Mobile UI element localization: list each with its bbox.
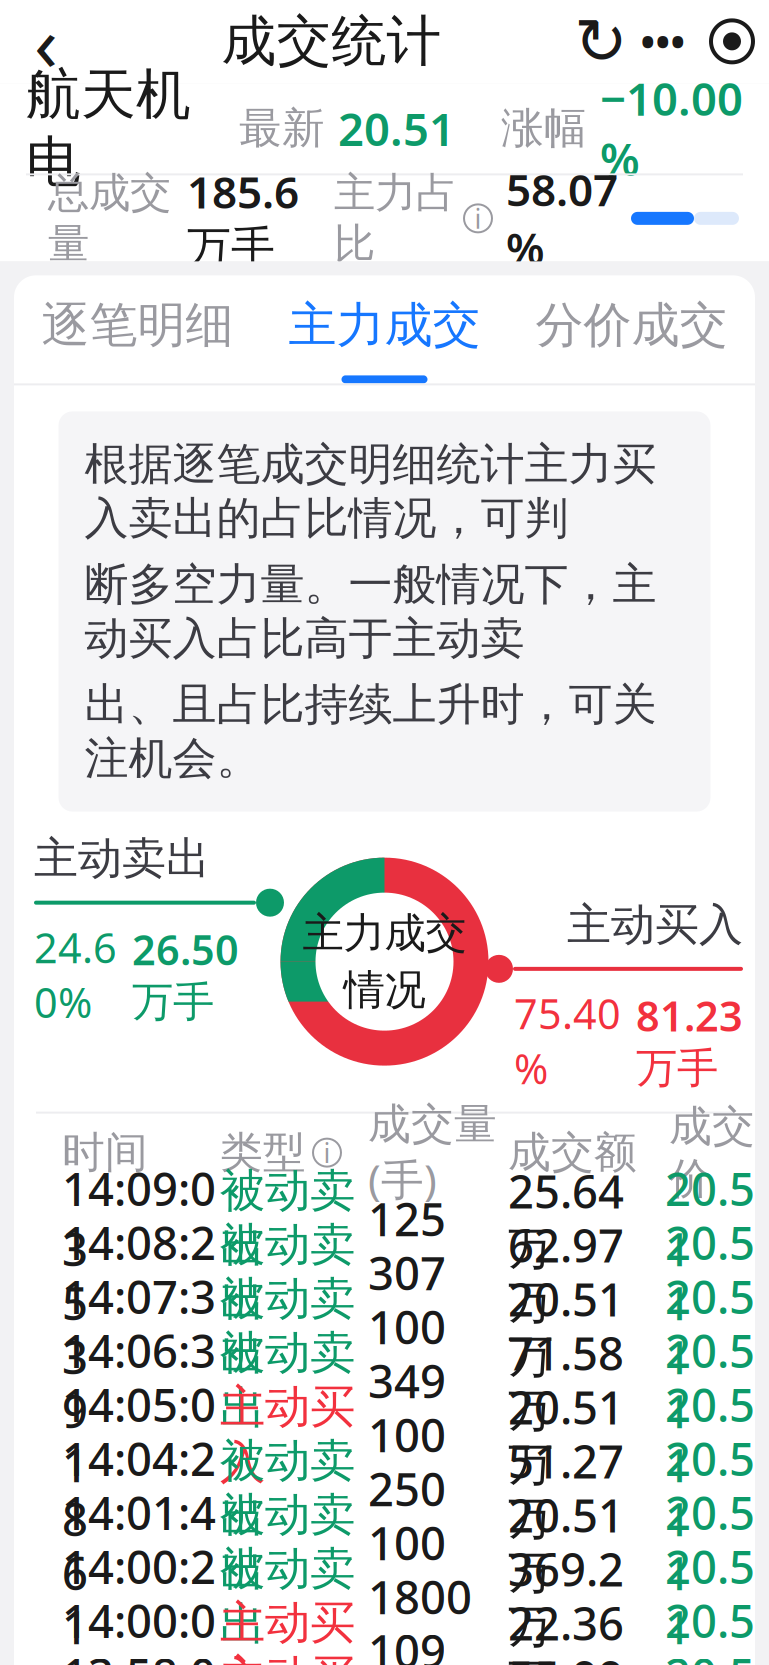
staticText: 主动买入 (567, 898, 743, 952)
staticText: 58.07% (506, 160, 618, 277)
staticText: 55.99万 (508, 1647, 624, 1665)
staticText: 最新 (239, 102, 325, 155)
staticText: 出、且占比持续上升时，可关注机会。 (84, 677, 656, 786)
staticText: 14:07:33 (62, 1266, 216, 1387)
staticText: 71.58万 (508, 1323, 624, 1439)
staticText: 369.2万 (508, 1539, 624, 1655)
button[interactable]: 14:01:46 (14, 1516, 755, 1570)
button[interactable]: 14:05:01 (14, 1408, 755, 1462)
staticText: 被动卖出 (220, 1325, 355, 1436)
staticText: 14:04:28 (62, 1428, 216, 1549)
staticText: 109 (368, 1620, 446, 1665)
staticText: 14:09:03 (62, 1158, 216, 1279)
staticText: 成交价 (669, 1100, 755, 1205)
staticText: 被动卖出 (220, 1433, 355, 1544)
staticText: 主动买入 (220, 1595, 355, 1665)
staticText: 14:05:01 (62, 1374, 216, 1495)
staticText: 断多空力量。一般情况下，主动买入占比高于主动卖 (84, 557, 656, 666)
staticText: 被动卖出 (220, 1541, 355, 1652)
staticText: 主动买入 (220, 1649, 355, 1665)
staticText: 26.50万手 (132, 922, 239, 1027)
staticText: i (323, 1135, 330, 1170)
staticText: 14:00:01 (62, 1590, 216, 1665)
staticText: 时间 (62, 1126, 148, 1179)
staticText: 13:58:04 (62, 1644, 216, 1665)
staticText: ‹ (34, 0, 58, 93)
staticText: 20.51 (665, 1482, 755, 1603)
staticText: 主力成交 (288, 296, 480, 355)
staticText: 307 (368, 1242, 446, 1303)
button[interactable]: 14:04:28 (14, 1462, 755, 1516)
staticText: 20.51万 (508, 1485, 624, 1601)
button[interactable]: 逐笔明细 (14, 275, 261, 383)
staticText: 20.51 (665, 1590, 755, 1665)
staticText: 成交统计 (221, 8, 441, 75)
staticText: 主力占比 (334, 168, 457, 269)
staticText: 情况 (343, 965, 425, 1015)
staticText: ••• (640, 16, 685, 67)
staticText: 20.51 (665, 1212, 755, 1333)
staticText: 1800 (368, 1566, 472, 1627)
button[interactable]: 14:00:21 (14, 1570, 755, 1624)
button[interactable]: Record (695, 0, 769, 83)
staticText: 250 (368, 1458, 446, 1519)
staticText: 20.51 (665, 1644, 755, 1665)
button[interactable]: 14:00:01 (14, 1624, 755, 1665)
staticText: 成交量(手) (368, 1098, 497, 1207)
staticText: 分价成交 (535, 296, 727, 355)
staticText: 涨幅 (501, 102, 587, 155)
staticText: 类型 (220, 1126, 306, 1179)
staticText: 主力成交 (302, 908, 466, 959)
staticText: 349 (368, 1350, 446, 1411)
button[interactable]: 分价成交 (508, 275, 755, 383)
staticText: 14:06:39 (62, 1320, 216, 1441)
staticText: 100 (368, 1512, 446, 1573)
staticText: 75.40% (514, 986, 621, 1096)
staticText: 62.97万 (508, 1215, 624, 1331)
staticText: −10.00% (600, 68, 743, 189)
staticText: 20.51万 (508, 1269, 624, 1385)
staticText: 20.51 (665, 1158, 755, 1279)
button[interactable]: 主力成交 (261, 275, 508, 383)
staticText: 14:01:46 (62, 1482, 216, 1603)
staticText: 14:00:21 (62, 1536, 216, 1657)
staticText: 航天机电 (26, 61, 191, 195)
staticText: 100 (368, 1296, 446, 1357)
button[interactable]: Refresh (571, 0, 631, 83)
staticText: 主动买入 (220, 1379, 355, 1490)
staticText: 81.23万手 (636, 988, 743, 1094)
staticText: 20.51 (665, 1536, 755, 1657)
staticText: 被动卖出 (220, 1487, 355, 1598)
staticText: 20.51 (665, 1266, 755, 1387)
staticText: 25.64万 (508, 1161, 624, 1277)
staticText: 逐笔明细 (41, 296, 233, 355)
staticText: 主动卖出 (34, 832, 210, 886)
staticText: 根据逐笔成交明细统计主力买入卖出的占比情况，可判 (84, 437, 656, 545)
staticText: 51.27万 (508, 1431, 624, 1547)
staticText: 125 (368, 1188, 446, 1249)
button[interactable]: 14:09:03 (14, 1192, 755, 1246)
staticText: 22.36万 (508, 1593, 624, 1665)
staticText: 100 (368, 1404, 446, 1465)
staticText: i (474, 201, 481, 236)
staticText: 被动卖出 (220, 1217, 355, 1328)
button[interactable]: Back (0, 0, 92, 83)
staticText: 20.51万 (508, 1377, 624, 1493)
button[interactable]: 14:06:39 (14, 1354, 755, 1408)
staticText: 20.51 (665, 1374, 755, 1495)
staticText: 20.51 (338, 98, 455, 158)
staticText: 被动卖出 (220, 1163, 355, 1274)
button[interactable]: More options (631, 0, 695, 83)
staticText: 14:08:25 (62, 1212, 216, 1333)
staticText: 总成交量 (48, 168, 171, 269)
staticText: 成交额 (508, 1126, 637, 1179)
button[interactable]: 14:07:33 (14, 1300, 755, 1354)
button[interactable]: 14:08:25 (14, 1246, 755, 1300)
staticText: 20.51 (665, 1320, 755, 1441)
staticText: 185.6万手 (187, 162, 299, 275)
staticText: ↻ (574, 5, 628, 78)
staticText: 被动卖出 (220, 1271, 355, 1382)
staticText: 24.60% (34, 920, 117, 1029)
staticText: 20.51 (665, 1428, 755, 1549)
